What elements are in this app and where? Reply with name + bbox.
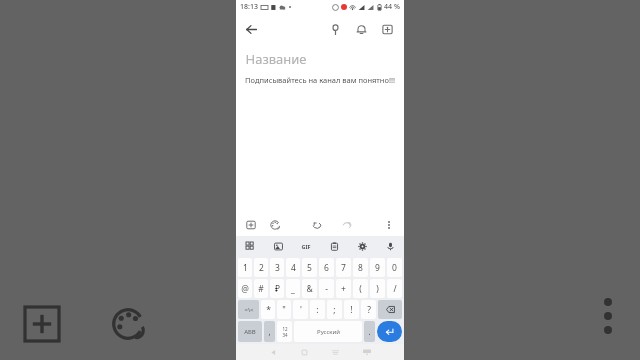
button[interactable]: АБВ (238, 321, 262, 342)
button[interactable]: mic (376, 236, 404, 257)
button[interactable]: 7 (336, 258, 351, 277)
staticText: ! (350, 304, 353, 316)
button[interactable]: : (310, 300, 325, 319)
button[interactable]: 0 (387, 258, 402, 277)
staticText: 3 (275, 262, 280, 274)
button[interactable]: Back (258, 344, 289, 360)
button[interactable]: 3 (270, 258, 284, 277)
button[interactable]: ) (370, 279, 385, 298)
button[interactable]: More options (604, 298, 612, 334)
button[interactable]: ? (361, 300, 376, 319)
staticText: 34 (282, 332, 288, 338)
button[interactable]: ₽ (270, 279, 284, 298)
staticText: 9 (375, 262, 380, 274)
staticText: =\< (244, 306, 254, 314)
button[interactable]: settings (348, 236, 376, 257)
staticText: & (306, 283, 313, 295)
staticText: ; (333, 304, 336, 316)
staticText: 44 % (384, 2, 400, 12)
button[interactable]: 5 (302, 258, 317, 277)
button[interactable]: More options (379, 215, 399, 235)
button[interactable]: Enter (377, 321, 402, 342)
button[interactable]: _ (286, 279, 300, 298)
button[interactable]: Подписывайтесь на канал вам понятно!!! (245, 75, 395, 85)
staticText: Подписывайтесь на канал вам понятно!!! (245, 75, 395, 85)
button[interactable]: Название (245, 50, 395, 68)
button[interactable]: ( (353, 279, 368, 298)
staticText: ₽ (275, 283, 280, 295)
button[interactable]: grid (236, 236, 264, 257)
staticText: 5 (307, 262, 312, 274)
button[interactable]: Add attachment (241, 215, 261, 235)
button[interactable]: Home (289, 344, 320, 360)
staticText: 0 (392, 262, 397, 274)
staticText: 1 (243, 262, 248, 274)
staticText: 7 (341, 262, 346, 274)
button[interactable]: 6 (319, 258, 334, 277)
button[interactable]: Recents (320, 344, 351, 360)
staticText: ) (376, 283, 379, 295)
staticText: - (325, 283, 328, 295)
staticText: _ (291, 283, 295, 295)
button[interactable]: Add (20, 302, 64, 346)
staticText: " (282, 304, 286, 316)
button[interactable]: ; (327, 300, 342, 319)
button[interactable]: Archive (374, 16, 400, 42)
staticText: 2 (259, 262, 264, 274)
button[interactable]: 2 (254, 258, 268, 277)
staticText: * (266, 304, 271, 316)
button[interactable]: " (277, 300, 291, 319)
staticText: 8 (358, 262, 363, 274)
staticText: АБВ (244, 328, 256, 336)
staticText: 12 (282, 326, 288, 332)
staticText: / (393, 283, 397, 295)
staticText: + (341, 283, 346, 295)
staticText: Русский (317, 328, 340, 336)
button[interactable]: Undo (307, 215, 327, 235)
button[interactable]: 1 (238, 258, 252, 277)
button[interactable]: , (264, 321, 275, 342)
button[interactable]: 9 (370, 258, 385, 277)
button[interactable]: ! (344, 300, 359, 319)
button[interactable]: sticker (264, 236, 292, 257)
staticText: ? (367, 304, 371, 316)
button[interactable]: Symbols (238, 300, 259, 319)
button[interactable]: + (336, 279, 351, 298)
button[interactable]: Русский (294, 321, 362, 342)
button[interactable]: Reminder (348, 16, 374, 42)
button[interactable]: Back (236, 14, 266, 44)
button[interactable]: Pin (322, 16, 348, 42)
button[interactable]: * (261, 300, 275, 319)
staticText: 6 (324, 262, 329, 274)
button[interactable]: Redo (337, 215, 357, 235)
staticText: ( (359, 283, 362, 295)
button[interactable]: . (364, 321, 375, 342)
button[interactable]: 4 (286, 258, 300, 277)
button[interactable]: Hide keyboard (351, 344, 382, 360)
button[interactable]: Numbers (277, 321, 292, 342)
button[interactable]: ' (293, 300, 308, 319)
button[interactable]: Backspace (378, 300, 402, 319)
button[interactable]: Palette (106, 302, 150, 346)
staticText: 18:13 (240, 2, 258, 12)
staticText: # (258, 283, 264, 295)
button[interactable]: clipboard (320, 236, 348, 257)
staticText: ' (300, 304, 302, 316)
staticText: 4 (291, 262, 296, 274)
button[interactable]: GIF (292, 236, 320, 257)
staticText: Название (245, 50, 307, 68)
button[interactable]: Palette (265, 215, 285, 235)
button[interactable]: & (302, 279, 317, 298)
button[interactable]: - (319, 279, 334, 298)
button[interactable]: / (387, 279, 402, 298)
staticText: , (268, 326, 271, 337)
staticText: : (316, 304, 319, 316)
staticText: . (368, 326, 371, 337)
button[interactable]: # (254, 279, 268, 298)
staticText: @ (241, 283, 249, 295)
button[interactable]: 8 (353, 258, 368, 277)
button[interactable]: @ (238, 279, 252, 298)
staticText: GIF (301, 243, 311, 250)
